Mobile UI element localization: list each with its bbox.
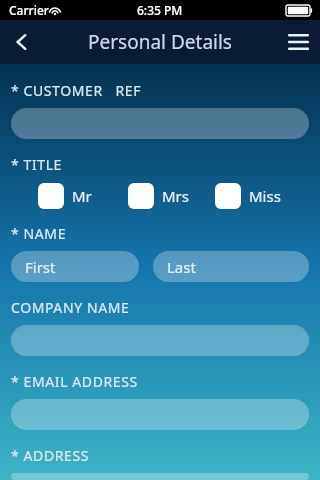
staticText: First <box>25 257 56 277</box>
staticText: * ADDRESS <box>11 446 90 465</box>
button[interactable]: Last <box>153 251 309 282</box>
button[interactable]: Mrs <box>128 183 154 209</box>
button[interactable]: First <box>11 251 139 282</box>
button[interactable]: Menu <box>276 20 320 64</box>
button[interactable] <box>11 399 309 430</box>
button[interactable]: Miss <box>215 183 241 209</box>
staticText: Last <box>167 257 196 277</box>
button[interactable] <box>11 325 309 356</box>
button[interactable]: Back <box>0 20 44 64</box>
staticText: * CUSTOMER REF <box>11 81 142 100</box>
staticText: Personal Details <box>88 29 232 55</box>
button[interactable] <box>11 108 309 139</box>
staticText: Mrs <box>162 186 189 206</box>
staticText: * TITLE <box>11 155 62 174</box>
staticText: Carrier <box>9 2 49 18</box>
staticText: 6:35 PM <box>137 2 183 18</box>
staticText: COMPANY NAME <box>11 298 130 317</box>
staticText: * NAME <box>11 224 67 243</box>
staticText: * EMAIL ADDRESS <box>11 372 138 391</box>
staticText: Mr <box>72 186 92 206</box>
staticText: Miss <box>249 186 281 206</box>
button[interactable]: Mr <box>38 183 64 209</box>
